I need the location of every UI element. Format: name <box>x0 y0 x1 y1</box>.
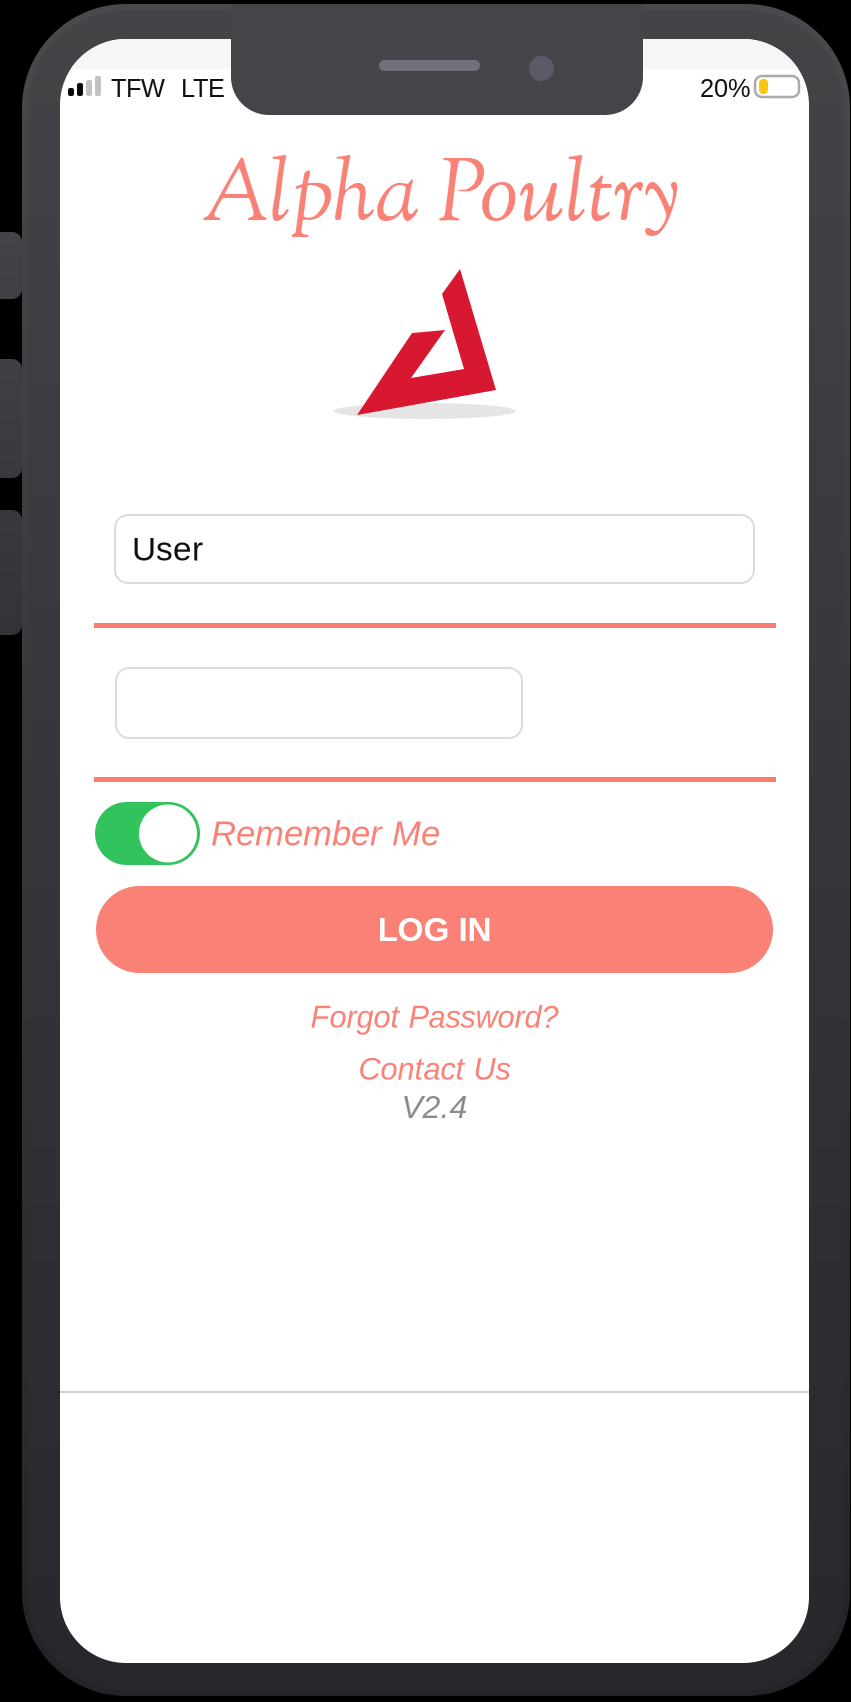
button[interactable]: Contact Us <box>60 1045 809 1093</box>
button[interactable]: LOG IN <box>96 886 773 973</box>
staticText: LOG IN <box>377 911 491 948</box>
staticText: Contact Us <box>358 1052 510 1086</box>
staticText: Remember Me <box>211 814 440 853</box>
button[interactable]: Forgot Password? <box>60 990 809 1044</box>
staticText: 20% <box>700 74 751 102</box>
staticText: Forgot Password? <box>310 1000 558 1034</box>
button[interactable]: Remember Me <box>95 802 655 865</box>
staticText: LTE <box>181 74 225 102</box>
staticText: V2.4 <box>401 1089 467 1125</box>
staticText: TFW <box>111 74 165 102</box>
staticText: User <box>132 530 203 568</box>
staticText: Alpha Poultry <box>201 137 679 261</box>
